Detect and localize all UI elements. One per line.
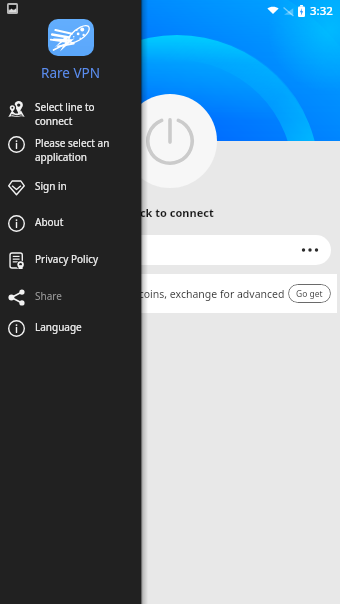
staticText: Watch the video to get coins, exchange f… bbox=[25, 287, 285, 301]
staticText: Click to connect bbox=[0, 205, 340, 220]
staticText: Go get bbox=[296, 288, 323, 300]
button[interactable]: Select line to connect bbox=[0, 98, 141, 130]
button[interactable]: Share bbox=[0, 287, 141, 309]
button[interactable]: Connect bbox=[123, 94, 217, 188]
button[interactable]: About bbox=[0, 213, 141, 235]
button[interactable]: Privacy Policy bbox=[0, 250, 141, 272]
staticText: Select line to connect bbox=[35, 100, 131, 128]
button[interactable]: Go get bbox=[288, 284, 331, 303]
staticText: 3:32 bbox=[310, 3, 333, 19]
staticText: Share bbox=[35, 289, 131, 303]
button[interactable]: Sign in bbox=[0, 177, 141, 199]
staticText: Language bbox=[35, 320, 131, 334]
staticText: Rare VPN bbox=[0, 64, 141, 82]
other: Image bbox=[7, 3, 18, 14]
button[interactable]: Language bbox=[0, 318, 141, 340]
staticText: About bbox=[35, 215, 131, 229]
staticText: Please select an application bbox=[35, 136, 131, 164]
button[interactable]: Please select an application bbox=[0, 134, 141, 166]
staticText: Sign in bbox=[35, 179, 131, 193]
button[interactable]: Select server bbox=[9, 235, 331, 265]
staticText: Privacy Policy bbox=[35, 252, 131, 266]
